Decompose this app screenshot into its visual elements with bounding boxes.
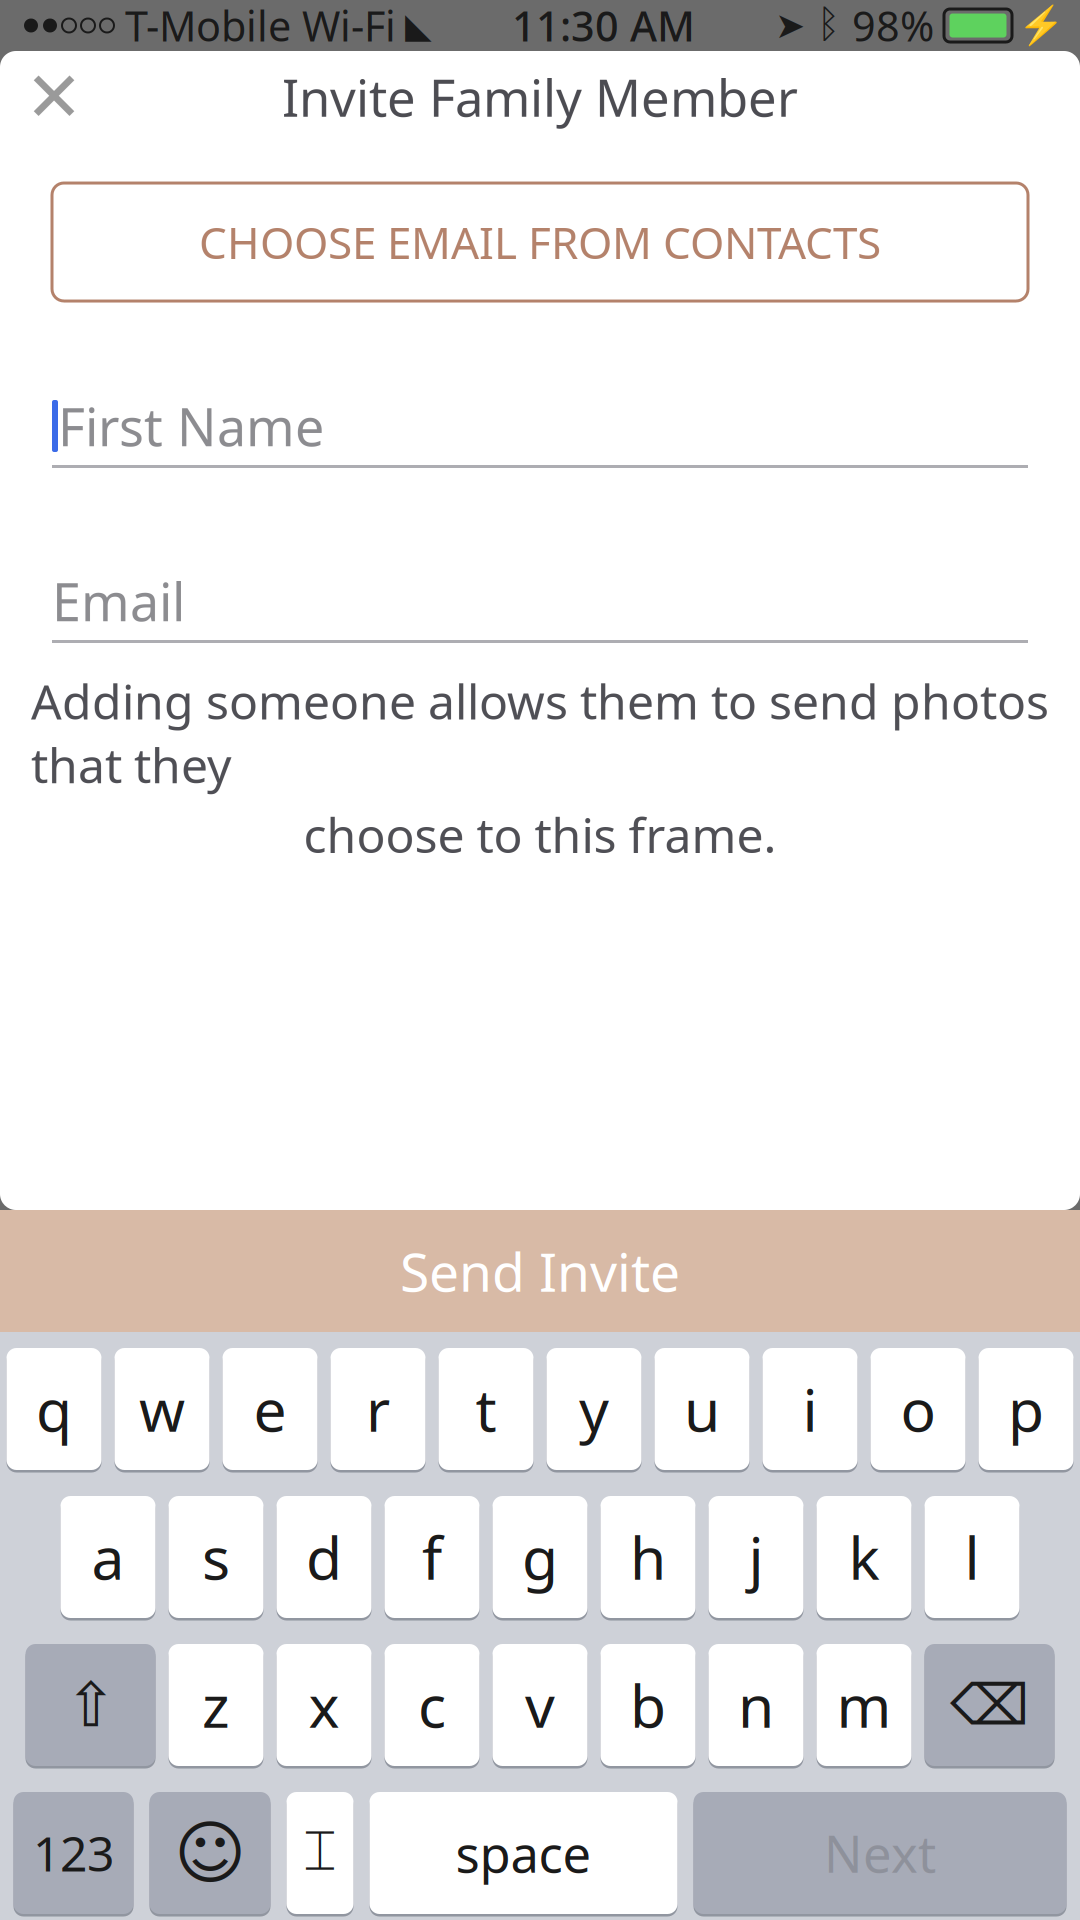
staticText: k bbox=[848, 1518, 879, 1596]
staticText: e bbox=[253, 1370, 286, 1448]
staticText: j bbox=[748, 1518, 763, 1596]
staticText: CHOOSE EMAIL FROM CONTACTS bbox=[199, 213, 881, 271]
staticText: p bbox=[1008, 1370, 1044, 1448]
staticText: t bbox=[475, 1370, 496, 1448]
button[interactable]: z bbox=[168, 1641, 263, 1768]
staticText: space bbox=[455, 1819, 591, 1887]
button[interactable]: g bbox=[492, 1493, 587, 1620]
button[interactable]: CHOOSE EMAIL FROM CONTACTS bbox=[52, 183, 1028, 301]
button[interactable]: u bbox=[654, 1345, 749, 1472]
button[interactable]: Close bbox=[4, 51, 104, 143]
staticText: ➤ bbox=[775, 5, 805, 46]
staticText: 11:30 AM bbox=[512, 0, 695, 53]
button[interactable]: Send Invite bbox=[0, 1210, 1080, 1332]
staticText: o bbox=[900, 1370, 935, 1448]
staticText: y bbox=[579, 1370, 609, 1448]
button[interactable]: r bbox=[330, 1345, 425, 1472]
staticText: a bbox=[91, 1518, 124, 1596]
button[interactable]: b bbox=[600, 1641, 695, 1768]
staticText: n bbox=[738, 1666, 774, 1744]
staticText: q bbox=[36, 1370, 72, 1448]
button[interactable]: c bbox=[384, 1641, 479, 1768]
staticText: b bbox=[630, 1666, 666, 1744]
staticText: ᛒ bbox=[817, 7, 840, 44]
staticText: 98% bbox=[852, 0, 934, 53]
button[interactable]: q bbox=[6, 1345, 101, 1472]
button[interactable]: e bbox=[222, 1345, 317, 1472]
button[interactable]: a bbox=[60, 1493, 155, 1620]
button[interactable]: space bbox=[369, 1789, 677, 1916]
staticText: v bbox=[525, 1666, 555, 1744]
button[interactable]: Delete bbox=[924, 1641, 1054, 1768]
button[interactable]: m bbox=[816, 1641, 911, 1768]
staticText: g bbox=[522, 1518, 558, 1596]
staticText: s bbox=[202, 1518, 230, 1596]
staticText: w bbox=[139, 1370, 185, 1448]
staticText: Adding someone allows them to send photo… bbox=[31, 669, 1049, 796]
button[interactable]: f bbox=[384, 1493, 479, 1620]
button[interactable]: i bbox=[762, 1345, 857, 1472]
staticText: z bbox=[202, 1666, 230, 1744]
button[interactable]: l bbox=[924, 1493, 1019, 1620]
staticText: ⚡ bbox=[1018, 4, 1064, 47]
button[interactable]: Next bbox=[693, 1789, 1066, 1916]
staticText: T-Mobile Wi-Fi bbox=[125, 0, 396, 53]
staticText: r bbox=[366, 1370, 390, 1448]
staticText: d bbox=[306, 1518, 342, 1596]
staticText: u bbox=[684, 1370, 720, 1448]
button[interactable]: Dictation bbox=[286, 1789, 353, 1916]
staticText: ⌶ bbox=[303, 1826, 337, 1880]
staticText: x bbox=[308, 1666, 339, 1744]
button[interactable]: Numbers bbox=[13, 1789, 133, 1916]
button[interactable]: o bbox=[870, 1345, 965, 1472]
staticText: i bbox=[802, 1370, 817, 1448]
staticText: First Name bbox=[58, 391, 324, 461]
staticText: c bbox=[418, 1666, 446, 1744]
button[interactable]: x bbox=[276, 1641, 371, 1768]
button[interactable]: k bbox=[816, 1493, 911, 1620]
button[interactable]: n bbox=[708, 1641, 803, 1768]
staticText: Invite Family Member bbox=[282, 63, 798, 131]
button[interactable]: Emoji bbox=[149, 1789, 270, 1916]
staticText: Next bbox=[824, 1819, 936, 1887]
staticText: Email bbox=[52, 566, 185, 636]
staticText: 123 bbox=[33, 1821, 114, 1885]
button[interactable]: v bbox=[492, 1641, 587, 1768]
button[interactable]: t bbox=[438, 1345, 533, 1472]
staticText: choose to this frame. bbox=[303, 802, 776, 866]
staticText: ✕ bbox=[25, 58, 83, 136]
staticText: f bbox=[422, 1518, 442, 1596]
staticText: m bbox=[836, 1666, 891, 1744]
staticText: Send Invite bbox=[400, 1236, 680, 1306]
button[interactable]: h bbox=[600, 1493, 695, 1620]
button[interactable]: j bbox=[708, 1493, 803, 1620]
staticText: ⌫ bbox=[950, 1673, 1029, 1737]
staticText: ☺ bbox=[174, 1814, 246, 1892]
button[interactable]: y bbox=[546, 1345, 641, 1472]
button[interactable]: p bbox=[978, 1345, 1073, 1472]
staticText: ◣ bbox=[405, 6, 432, 45]
staticText: ⇧ bbox=[65, 1670, 116, 1740]
button[interactable]: w bbox=[114, 1345, 209, 1472]
button[interactable]: d bbox=[276, 1493, 371, 1620]
button[interactable]: Shift bbox=[25, 1641, 155, 1768]
staticText: h bbox=[630, 1518, 666, 1596]
staticText: l bbox=[964, 1518, 979, 1596]
button[interactable]: s bbox=[168, 1493, 263, 1620]
